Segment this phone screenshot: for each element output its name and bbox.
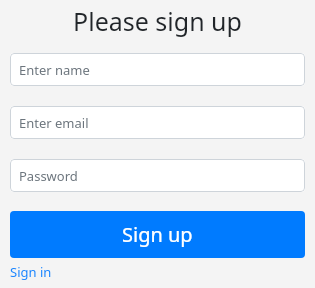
button[interactable]: Sign in xyxy=(10,263,52,281)
staticText: Enter email xyxy=(19,114,89,132)
button[interactable]: Sign up xyxy=(10,211,305,258)
staticText: Sign up xyxy=(122,221,193,248)
staticText: Enter name xyxy=(19,61,90,79)
button[interactable]: Password xyxy=(10,159,305,192)
staticText: Password xyxy=(19,167,78,185)
button[interactable]: Enter name xyxy=(10,53,305,86)
staticText: Sign in xyxy=(10,263,52,281)
button[interactable]: Enter email xyxy=(10,106,305,139)
staticText: Please sign up xyxy=(73,4,242,38)
